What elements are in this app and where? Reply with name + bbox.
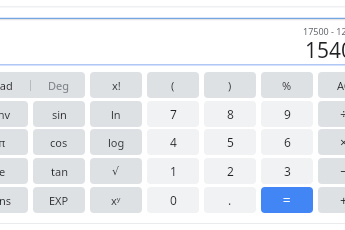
staticText: 0 [170,192,177,208]
button[interactable]: 1 [147,158,199,184]
button[interactable]: ) [204,72,256,98]
button[interactable]: − [318,158,345,184]
staticText: xʸ [111,193,121,208]
button[interactable]: 6 [261,129,313,155]
button[interactable]: = [261,187,313,213]
staticText: √ [112,165,120,178]
staticText: Deg [48,78,69,93]
staticText: ln [111,107,121,122]
button[interactable]: × [318,129,345,155]
button[interactable]: e [0,158,28,184]
button[interactable]: EXP [33,187,85,213]
button[interactable]: xʸ [90,187,142,213]
button[interactable]: 8 [204,101,256,127]
staticText: . [228,192,232,208]
button[interactable]: + [318,187,345,213]
staticText: ) [228,78,232,93]
staticText: 5 [227,134,234,150]
button[interactable]: 2 [204,158,256,184]
button[interactable]: 0 [147,187,199,213]
button[interactable]: Inv [0,101,28,127]
button[interactable]: AC [318,72,345,98]
staticText: Inv [0,107,11,122]
staticText: 15400 [305,36,345,65]
button[interactable]: % [261,72,313,98]
staticText: Rad [0,78,13,93]
staticText: 3 [284,163,291,179]
staticText: 8 [227,106,234,122]
staticText: x! [112,78,121,93]
button[interactable]: tan [33,158,85,184]
staticText: − [340,162,345,180]
button[interactable]: Ans [0,187,28,213]
button[interactable]: cos [33,129,85,155]
staticText: 4 [170,134,177,150]
button[interactable]: Rad [0,72,85,98]
staticText: π [0,135,6,150]
button[interactable]: x! [90,72,142,98]
button[interactable]: sin [33,101,85,127]
button[interactable]: 5 [204,129,256,155]
staticText: Ans [0,193,12,208]
staticText: EXP [49,193,69,208]
button[interactable]: . [204,187,256,213]
button[interactable]: π [0,129,28,155]
staticText: ( [171,78,175,93]
button[interactable]: 3 [261,158,313,184]
button[interactable]: ÷ [318,101,345,127]
button[interactable]: log [90,129,142,155]
staticText: 1 [170,163,177,179]
staticText: 2 [227,163,234,179]
staticText: % [282,78,292,93]
staticText: 7 [170,106,177,122]
staticText: + [340,191,345,209]
staticText: sin [52,107,67,122]
staticText: AC [337,78,345,93]
staticText: cos [50,135,68,150]
staticText: × [340,133,345,151]
staticText: = [283,191,291,209]
staticText: 9 [284,106,291,122]
button[interactable]: √ [90,158,142,184]
staticText: log [108,135,125,150]
button[interactable]: ln [90,101,142,127]
button[interactable]: 7 [147,101,199,127]
staticText: ÷ [340,105,345,123]
staticText: tan [51,164,68,179]
staticText: e [0,164,6,179]
button[interactable]: 4 [147,129,199,155]
staticText: 17500 - 12500 [303,25,345,37]
button[interactable]: ( [147,72,199,98]
staticText: 6 [284,134,291,150]
button[interactable]: 9 [261,101,313,127]
